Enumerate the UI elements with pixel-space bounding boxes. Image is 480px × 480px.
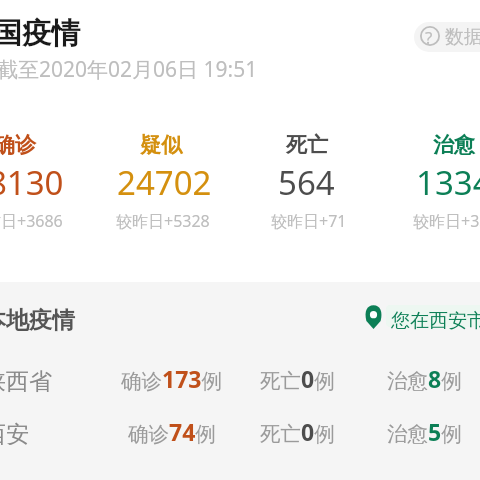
staticText: 较昨日+71: [271, 210, 347, 232]
staticText: 治愈5例: [387, 416, 462, 447]
button[interactable]: Data notes: [414, 22, 480, 52]
other: Data notes: [420, 26, 440, 46]
staticText: 本地疫情: [0, 306, 75, 335]
staticText: 疑似: [140, 132, 182, 158]
staticText: 数据说明: [445, 25, 480, 49]
staticText: 死亡0例: [260, 416, 335, 447]
button[interactable]: 陕西省: [0, 346, 480, 399]
staticText: 截至2020年02月06日 19:51: [0, 55, 258, 84]
staticText: 确诊173例: [121, 363, 222, 394]
staticText: 564: [278, 160, 335, 205]
staticText: ?: [425, 26, 433, 49]
staticText: 1334: [416, 160, 480, 205]
staticText: 全国疫情: [0, 15, 80, 52]
staticText: 死亡0例: [260, 363, 335, 394]
button[interactable]: 西安: [0, 399, 480, 452]
staticText: 治愈: [433, 132, 475, 158]
staticText: 您在西安市: [391, 309, 480, 333]
staticText: 西安: [0, 420, 29, 449]
staticText: 陕西省: [0, 367, 52, 396]
staticText: 确诊: [0, 132, 36, 158]
staticText: 较昨日+331: [413, 210, 480, 232]
staticText: 28130: [0, 160, 64, 205]
button[interactable]: Your location: [360, 300, 480, 334]
staticText: 死亡: [286, 132, 328, 158]
staticText: 治愈8例: [387, 363, 462, 394]
staticText: 24702: [117, 160, 212, 205]
staticText: 较昨日+5328: [116, 210, 210, 232]
staticText: 确诊74例: [128, 416, 216, 447]
staticText: 较昨日+3686: [0, 210, 63, 232]
other: Your location: [364, 305, 383, 329]
